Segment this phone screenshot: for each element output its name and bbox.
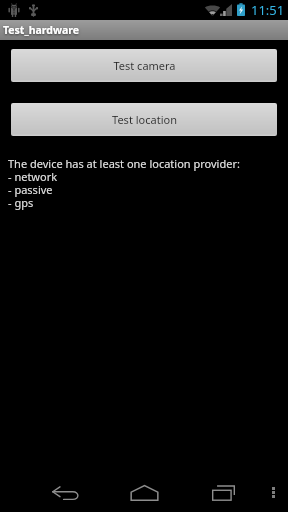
staticText: 11:51: [251, 1, 285, 19]
button[interactable]: Test camera: [11, 49, 277, 82]
staticText: Test_hardware: [3, 23, 79, 37]
button[interactable]: Back: [41, 485, 89, 512]
button[interactable]: Home: [120, 485, 168, 512]
button[interactable]: Recent apps: [202, 485, 250, 512]
button[interactable]: Test location: [11, 103, 277, 136]
staticText: Test camera: [113, 58, 176, 73]
staticText: The device has at least one location pro…: [8, 156, 240, 210]
button[interactable]: More options: [258, 485, 288, 512]
staticText: Test location: [112, 112, 177, 127]
